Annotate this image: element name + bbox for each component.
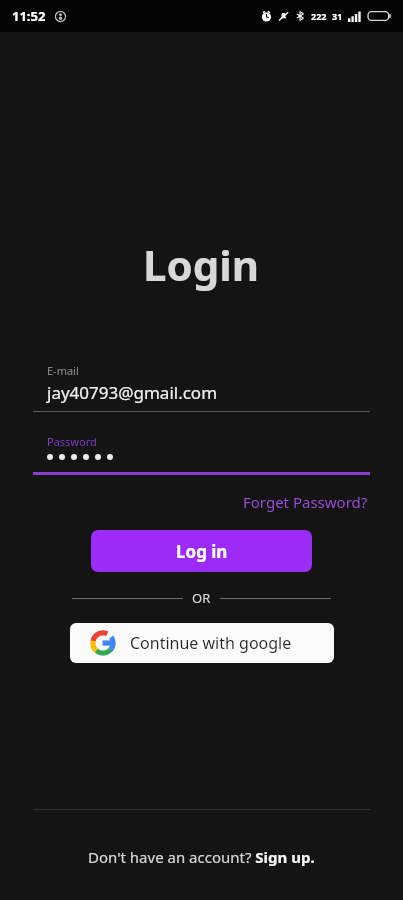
staticText: Forget Password?	[243, 492, 368, 512]
button[interactable]: Password	[33, 434, 370, 475]
button[interactable]: Google	[70, 623, 334, 663]
other: Google	[92, 632, 114, 654]
staticText: Login	[143, 236, 260, 293]
button[interactable]: Don't have an account? Sign up.	[85, 844, 318, 870]
staticText: 222	[311, 10, 327, 22]
staticText: 11:52	[12, 7, 46, 25]
staticText: OR	[192, 589, 211, 607]
staticText: 31	[332, 10, 343, 22]
staticText: Log in	[176, 540, 228, 563]
staticText: E-mail	[47, 363, 79, 378]
staticText: Don't have an account? Sign up.	[88, 847, 315, 867]
button[interactable]: E-mail	[33, 363, 370, 412]
staticText: Password	[47, 434, 97, 449]
staticText: Continue with google	[130, 632, 292, 654]
button[interactable]: Forget Password?	[241, 490, 370, 514]
staticText: jay40793@gmail.com	[47, 381, 218, 404]
button[interactable]: Log in	[91, 530, 312, 572]
